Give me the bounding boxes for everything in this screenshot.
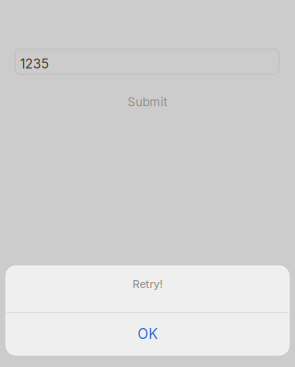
button[interactable]: Submit [0, 91, 295, 113]
staticText: Submit [127, 95, 167, 109]
staticText: OK [137, 325, 157, 342]
button[interactable]: OK [6, 313, 289, 355]
staticText: Retry! [132, 277, 162, 291]
staticText: 1235 [20, 56, 49, 72]
